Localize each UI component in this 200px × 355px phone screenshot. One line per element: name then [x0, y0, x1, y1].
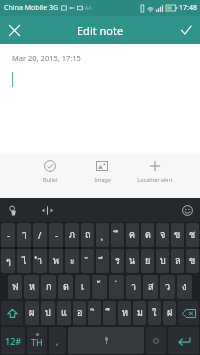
- staticText: -: [7, 229, 10, 241]
- staticText: ,: [56, 335, 59, 347]
- staticText: ฝ: [167, 306, 173, 320]
- staticText: ก: [46, 280, 52, 294]
- button[interactable]: ส: [143, 275, 158, 299]
- staticText: TH: [31, 336, 43, 348]
- staticText: อ: [77, 306, 83, 320]
- button[interactable]: ล: [171, 249, 184, 273]
- staticText: น: [129, 254, 136, 268]
- button[interactable]: 12#: [1, 327, 25, 354]
- button[interactable]: ,: [49, 327, 66, 354]
- button[interactable]: อ: [73, 301, 86, 325]
- staticText: Location alert: [137, 176, 173, 183]
- button[interactable]: บ: [156, 249, 169, 273]
- button[interactable]: Save: [172, 16, 200, 44]
- staticText: ๆ: [6, 254, 11, 268]
- button[interactable]: -: [1, 223, 15, 247]
- button[interactable]: ท: [118, 301, 131, 325]
- button[interactable]: จ: [156, 223, 169, 247]
- button[interactable]: Emoji: [180, 203, 194, 217]
- staticText: พ: [53, 254, 59, 268]
- staticText: ภ: [69, 228, 75, 242]
- button[interactable]: Close: [0, 16, 28, 44]
- button[interactable]: ค: [126, 223, 139, 247]
- button[interactable]: ื: [103, 301, 116, 325]
- button[interactable]: เ: [75, 275, 90, 299]
- staticText: 12#: [5, 335, 22, 347]
- button[interactable]: Cursor control: [40, 203, 54, 217]
- button[interactable]: ิ: [88, 301, 101, 325]
- button[interactable]: ้: [92, 275, 107, 299]
- button[interactable]: ะ: [65, 249, 79, 273]
- button[interactable]: น: [126, 249, 139, 273]
- button[interactable]: ภ: [65, 223, 79, 247]
- button[interactable]: ต: [141, 223, 154, 247]
- button[interactable]: ุ: [96, 223, 109, 247]
- button[interactable]: ย: [141, 249, 154, 273]
- button[interactable]: ด: [58, 275, 73, 299]
- button[interactable]: Image: [78, 158, 126, 198]
- staticText: ฟ: [12, 280, 19, 294]
- button[interactable]: ข: [171, 223, 184, 247]
- button[interactable]: ช: [186, 223, 199, 247]
- button[interactable]: Location alert: [126, 158, 184, 198]
- button[interactable]: Settings: [146, 327, 166, 354]
- staticText: ต: [145, 228, 151, 242]
- button[interactable]: ร: [111, 249, 124, 273]
- staticText: ะ: [70, 254, 75, 268]
- button[interactable]: ม: [133, 301, 146, 325]
- button[interactable]: ข: [186, 249, 199, 273]
- button[interactable]: ใ: [148, 301, 161, 325]
- staticText: า: [131, 280, 137, 294]
- button[interactable]: ง: [177, 275, 192, 299]
- staticText: ง: [182, 280, 187, 294]
- button[interactable]: ๆ: [1, 249, 15, 273]
- staticText: ข: [174, 228, 181, 242]
- staticText: ท: [122, 306, 128, 320]
- button[interactable]: Space: [68, 327, 144, 354]
- button[interactable]: /: [33, 223, 47, 247]
- staticText: ข: [189, 254, 196, 268]
- staticText: Mar 20, 2015, 17:15: [12, 53, 81, 63]
- staticText: ผ: [29, 306, 35, 320]
- staticText: ค: [129, 228, 136, 242]
- button[interactable]: Handwriting: [6, 203, 20, 217]
- button[interactable]: ก: [41, 275, 56, 299]
- button[interactable]: Enter: [168, 327, 199, 354]
- staticText: Image: [94, 176, 111, 183]
- staticText: แ: [61, 306, 67, 320]
- button[interactable]: ห: [24, 275, 39, 299]
- staticText: บ: [160, 254, 166, 268]
- staticText: -: [55, 229, 58, 241]
- button[interactable]: ำ: [33, 249, 47, 273]
- button[interactable]: ผ: [25, 301, 39, 325]
- staticText: 17:48: [179, 3, 197, 13]
- button[interactable]: ั: [81, 249, 94, 273]
- button[interactable]: ฝ: [163, 301, 176, 325]
- button[interactable]: Shift: [1, 301, 23, 325]
- staticText: ด: [63, 280, 69, 294]
- button[interactable]: Backspace: [178, 301, 199, 325]
- button[interactable]: ไ: [17, 249, 31, 273]
- staticText: ป: [45, 306, 51, 320]
- staticText: ๅ: [22, 228, 27, 242]
- button[interactable]: Bullet: [22, 158, 78, 198]
- button[interactable]: ว: [160, 275, 175, 299]
- button[interactable]: ่: [109, 275, 124, 299]
- button[interactable]: ึ: [111, 223, 124, 247]
- button[interactable]: ถ: [81, 223, 94, 247]
- button[interactable]: แ: [57, 301, 71, 325]
- button[interactable]: ๅ: [17, 223, 31, 247]
- button[interactable]: ป: [41, 301, 55, 325]
- button[interactable]: ี: [96, 249, 109, 273]
- button[interactable]: TH: [27, 327, 47, 354]
- staticText: China Mobile 3G: [4, 3, 58, 13]
- staticText: /: [38, 229, 42, 241]
- staticText: Bullet: [43, 176, 58, 183]
- button[interactable]: า: [126, 275, 141, 299]
- button[interactable]: -: [49, 223, 63, 247]
- button[interactable]: พ: [49, 249, 63, 273]
- staticText: Edit note: [77, 23, 124, 38]
- staticText: ส: [148, 280, 154, 294]
- button[interactable]: ฟ: [8, 275, 22, 299]
- staticText: ใ: [152, 306, 157, 320]
